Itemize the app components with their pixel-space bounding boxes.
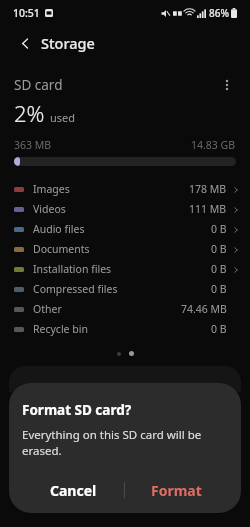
button[interactable]: Other (0, 299, 250, 319)
button[interactable]: Videos (0, 199, 250, 219)
staticText: SD card (14, 76, 63, 94)
button[interactable]: Installation files (0, 259, 250, 279)
staticText: 0 B (211, 322, 227, 336)
staticText: Audio files (33, 222, 85, 236)
staticText: 86% (209, 6, 229, 20)
staticText: 74.46 MB (181, 302, 227, 316)
staticText: 363 MB (14, 138, 52, 152)
button[interactable]: Recycle bin (0, 319, 250, 339)
staticText: Recycle bin (33, 322, 88, 336)
staticText: Format SD card? (22, 401, 132, 419)
staticText: 178 MB (189, 182, 227, 196)
staticText: 111 MB (189, 202, 227, 216)
button[interactable]: More options (216, 74, 238, 96)
staticText: used (50, 110, 76, 125)
button[interactable]: Documents (0, 239, 250, 259)
staticText: 0 B (211, 222, 227, 236)
button[interactable]: Images (0, 179, 250, 199)
staticText: Videos (33, 202, 66, 216)
staticText: 0 B (211, 282, 227, 296)
staticText: Documents (33, 242, 90, 256)
staticText: Cancel (50, 481, 97, 500)
staticText: Everything on this SD card will be erase… (22, 427, 228, 459)
staticText: 10:51 (13, 6, 40, 20)
button[interactable]: Audio files (0, 219, 250, 239)
staticText: Storage (41, 33, 95, 53)
staticText: Images (33, 182, 70, 196)
staticText: 0 B (211, 242, 227, 256)
button[interactable]: Format (125, 475, 228, 505)
button[interactable]: Back (14, 32, 36, 54)
button[interactable]: Compressed files (0, 279, 250, 299)
staticText: Compressed files (33, 282, 118, 296)
staticText: Other (33, 302, 62, 316)
staticText: 14.83 GB (191, 138, 236, 152)
button[interactable]: Cancel (22, 475, 124, 505)
staticText: Large files (22, 395, 83, 412)
staticText: Installation files (33, 262, 112, 276)
staticText: Format (151, 481, 202, 500)
staticText: 0 B (211, 262, 227, 276)
staticText: 2% (14, 98, 45, 128)
